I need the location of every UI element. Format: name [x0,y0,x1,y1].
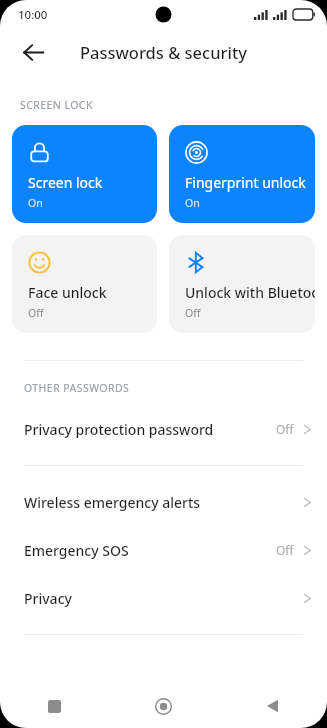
button[interactable]: Back [11,30,55,74]
staticText: Off [276,542,294,558]
staticText: Privacy [24,589,72,608]
staticText: On [28,196,43,210]
staticText: OTHER PASSWORDS [24,381,130,395]
button[interactable]: Fingerprint unlock [169,125,315,223]
staticText: Screen lock [28,173,103,192]
button[interactable]: Wireless emergency alerts [0,478,327,526]
button[interactable]: Screen lock [12,125,157,223]
staticText: Emergency SOS [24,541,129,560]
staticText: Wireless emergency alerts [24,493,201,512]
button[interactable]: Privacy protection password [0,405,327,453]
staticText: Unlock with Bluetooth [185,283,315,302]
button[interactable]: Emergency SOS [0,526,327,574]
button[interactable]: Recent apps [0,684,109,728]
staticText: Off [276,421,294,437]
staticText: Off [28,306,44,320]
staticText: Off [185,306,201,320]
button[interactable]: Home [109,684,218,728]
button[interactable]: Back [218,684,327,728]
button[interactable]: Privacy [0,574,327,622]
staticText: 10:00 [18,7,48,23]
staticText: Privacy protection password [24,420,214,439]
staticText: Fingerprint unlock [185,173,306,192]
staticText: On [185,196,200,210]
staticText: Passwords & security [80,41,247,63]
staticText: SCREEN LOCK [20,98,93,112]
button[interactable]: Unlock with Bluetooth [169,235,315,333]
button[interactable]: Face unlock [12,235,157,333]
staticText: Face unlock [28,283,107,302]
